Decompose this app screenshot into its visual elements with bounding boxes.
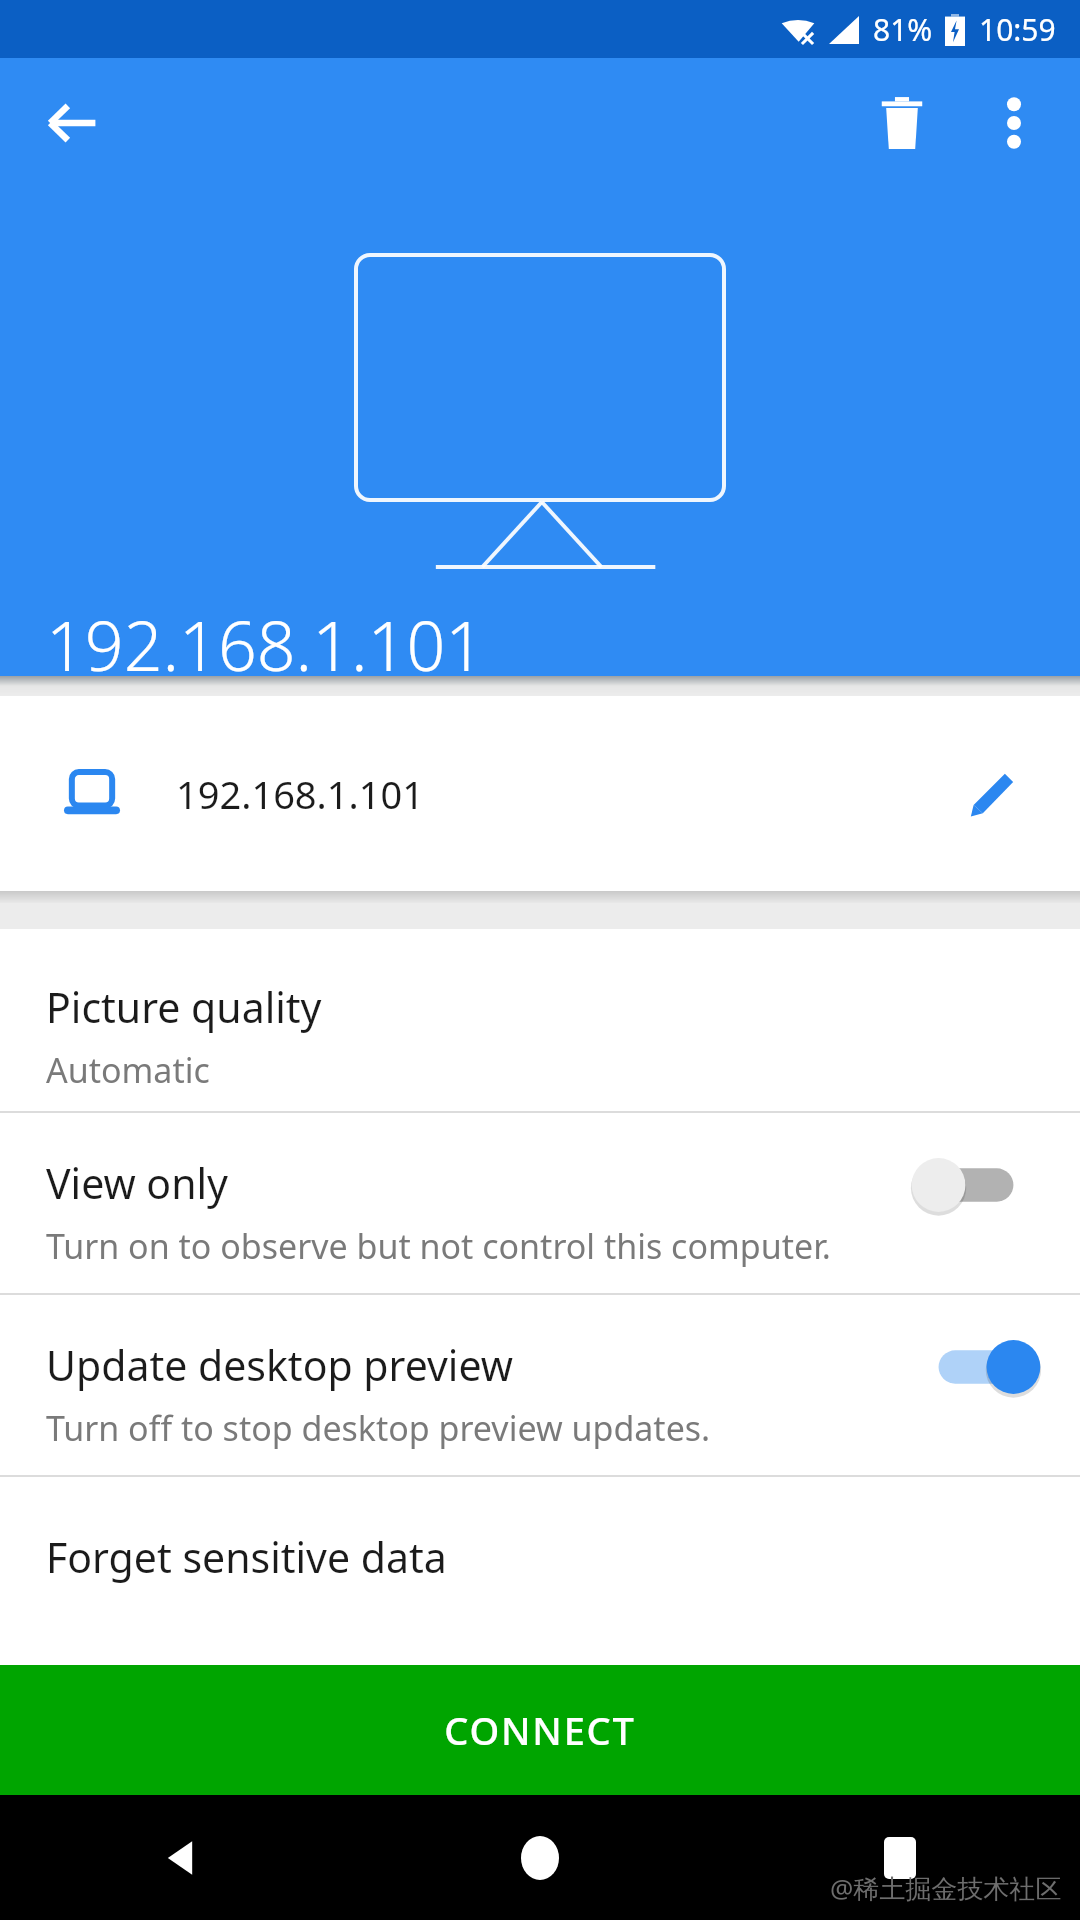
- button[interactable]: Recent apps: [720, 1795, 1080, 1920]
- button[interactable]: View only: [916, 1149, 1036, 1221]
- staticText: View only: [46, 1155, 228, 1211]
- button[interactable]: More options: [966, 75, 1062, 171]
- button[interactable]: 192.168.1.101: [0, 696, 1080, 891]
- button[interactable]: Delete: [854, 75, 950, 171]
- button[interactable]: Back: [0, 1795, 360, 1920]
- button[interactable]: CONNECT: [0, 1665, 1080, 1795]
- button[interactable]: Forget sensitive data: [0, 1477, 1080, 1637]
- button[interactable]: Update desktop preview: [0, 1295, 1080, 1475]
- staticText: 192.168.1.101: [46, 598, 485, 691]
- staticText: Automatic: [46, 1047, 210, 1093]
- staticText: CONNECT: [444, 1704, 636, 1756]
- button[interactable]: Home: [360, 1795, 720, 1920]
- staticText: 81%: [873, 9, 933, 50]
- staticText: Update desktop preview: [46, 1337, 513, 1393]
- staticText: Picture quality: [46, 979, 322, 1035]
- button[interactable]: Back: [24, 75, 120, 171]
- button[interactable]: View only: [0, 1113, 1080, 1293]
- button[interactable]: Picture quality: [0, 929, 1080, 1111]
- staticText: Forget sensitive data: [46, 1529, 447, 1585]
- button[interactable]: Edit: [950, 752, 1034, 836]
- staticText: 192.168.1.101: [176, 768, 424, 820]
- staticText: Turn on to observe but not control this …: [46, 1223, 831, 1269]
- staticText: @稀土掘金技术社区: [830, 1870, 1062, 1906]
- staticText: 10:59: [979, 9, 1056, 50]
- staticText: Turn off to stop desktop preview updates…: [46, 1405, 711, 1451]
- button[interactable]: Update desktop preview: [916, 1331, 1036, 1403]
